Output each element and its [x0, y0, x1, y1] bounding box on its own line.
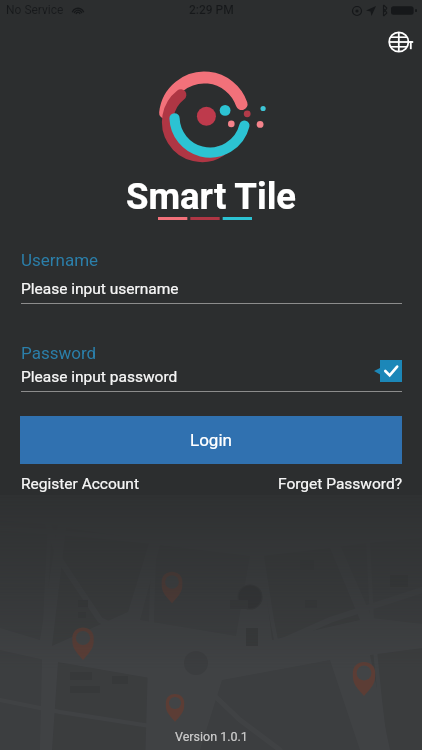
staticText: Forget Password? [278, 475, 402, 493]
button[interactable]: Forget Password? [278, 475, 402, 493]
staticText: Please input password [21, 368, 178, 386]
staticText: Login [190, 430, 232, 450]
staticText: Please input username [21, 280, 179, 298]
button[interactable]: Change language [386, 28, 414, 56]
staticText: Username [21, 250, 99, 270]
staticText: 2:29 PM [189, 3, 234, 17]
staticText: No Service [6, 3, 64, 17]
staticText: Password [21, 343, 97, 363]
staticText: Smart Tile [126, 175, 296, 218]
button[interactable]: Register Account [21, 475, 139, 493]
staticText: Version 1.0.1 [175, 729, 248, 744]
button[interactable]: Show password [374, 360, 402, 382]
button[interactable]: Login [20, 416, 402, 464]
staticText: Register Account [21, 475, 139, 493]
